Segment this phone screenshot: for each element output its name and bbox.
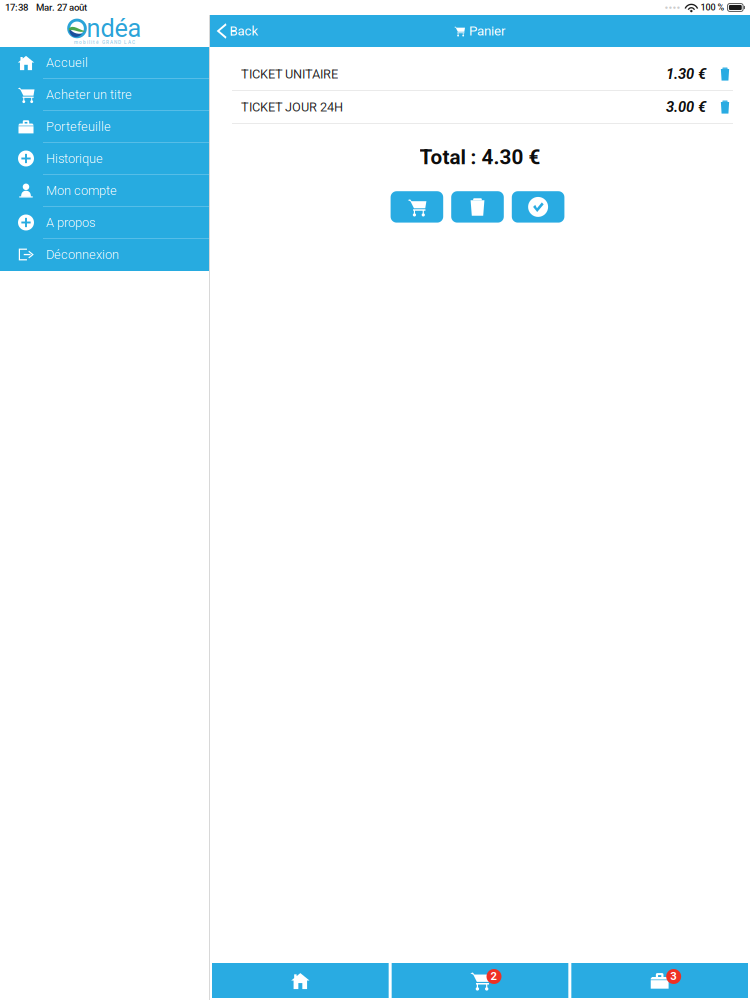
staticText: Back [229, 23, 258, 39]
button[interactable]: Back [210, 15, 310, 47]
staticText: m o b i l i t é G R A N D L A C [74, 39, 135, 45]
staticText: Panier [469, 23, 506, 39]
staticText: ● ● ● ● [665, 6, 680, 9]
staticText: TICKET JOUR 24H [241, 99, 343, 114]
staticText: Accueil [46, 55, 88, 70]
button[interactable]: Portefeuille, 3 titres [571, 963, 748, 998]
staticText: Total : 4.30 € [419, 145, 540, 169]
staticText: 17:38 [5, 2, 28, 13]
staticText: 3.00 € [666, 98, 706, 116]
button[interactable]: Historique [0, 143, 209, 175]
button[interactable]: Déconnexion [0, 239, 209, 271]
staticText: 3 [670, 970, 677, 983]
button[interactable]: Portefeuille [0, 111, 209, 143]
staticText: Déconnexion [46, 247, 119, 262]
staticText: 1.30 € [666, 65, 706, 83]
button[interactable]: Supprimer TICKET JOUR 24H [706, 91, 744, 122]
button[interactable]: Acheter un titre [0, 79, 209, 111]
staticText: 100 % [701, 2, 725, 13]
staticText: A propos [46, 215, 95, 230]
button[interactable]: Supprimer TICKET UNITAIRE [706, 58, 744, 89]
button[interactable]: Panier, 2 articles [392, 963, 568, 998]
staticText: TICKET UNITAIRE [241, 66, 338, 81]
staticText: Portefeuille [46, 119, 111, 134]
button[interactable]: Mon compte [0, 175, 209, 207]
button[interactable]: Ajouter au panier [391, 191, 443, 223]
staticText: Mar. 27 août [36, 2, 87, 13]
staticText: 2 [490, 970, 497, 983]
staticText: Mon compte [46, 183, 117, 198]
staticText: Acheter un titre [46, 87, 132, 102]
button[interactable]: Accueil [0, 47, 209, 79]
button[interactable]: Vider le panier [451, 191, 504, 223]
staticText: Historique [46, 151, 103, 166]
button[interactable]: Valider [512, 191, 564, 223]
button[interactable]: A propos [0, 207, 209, 239]
staticText: ndéa [86, 14, 141, 43]
button[interactable]: Accueil [212, 963, 389, 998]
